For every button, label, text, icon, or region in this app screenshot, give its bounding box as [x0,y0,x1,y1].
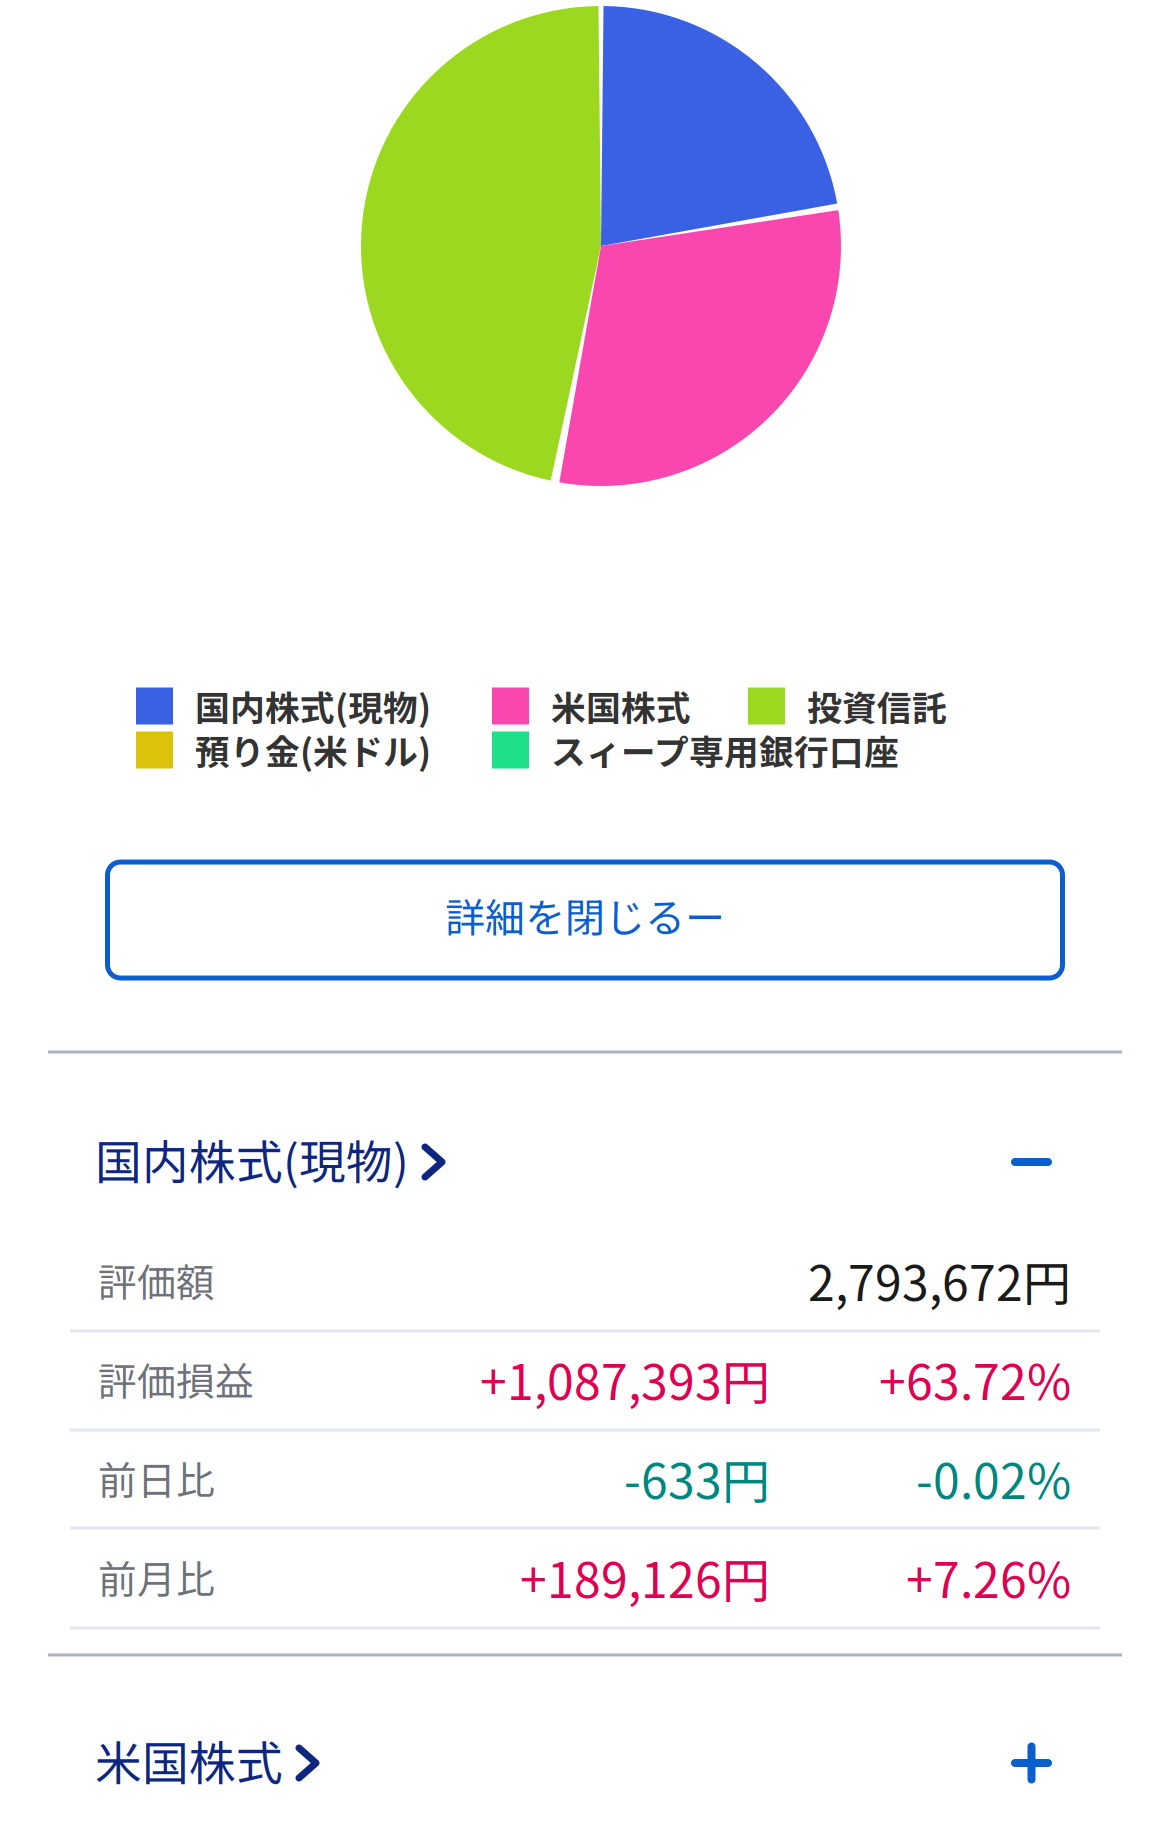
staticText: +189,126円 [520,1542,770,1612]
staticText: 前月比 [98,1549,215,1605]
staticText: 預り金(米ドル) [195,725,431,775]
staticText: 投資信託 [807,681,947,731]
staticText: +63.72% [879,1344,1071,1414]
button[interactable]: 国内株式(現物) [0,1107,1170,1217]
staticText: スィープ専用銀行口座 [551,725,899,775]
button[interactable]: 米国株式 [0,1708,1170,1818]
staticText: 2,793,672円 [808,1245,1071,1315]
staticText: 評価損益 [98,1351,254,1407]
button[interactable]: 詳細を閉じるー [107,862,1062,978]
staticText: 国内株式(現物) [95,1125,409,1193]
staticText: -0.02% [916,1443,1071,1513]
staticText: +1,087,393円 [480,1344,770,1414]
staticText: 前日比 [98,1450,215,1506]
staticText: 米国株式 [551,681,691,731]
staticText: +7.26% [906,1542,1071,1612]
staticText: 評価額 [98,1252,215,1308]
staticText: -633円 [624,1443,770,1513]
staticText: 国内株式(現物) [195,681,431,731]
staticText: 米国株式 [95,1726,283,1794]
staticText: 詳細を閉じるー [445,886,725,944]
